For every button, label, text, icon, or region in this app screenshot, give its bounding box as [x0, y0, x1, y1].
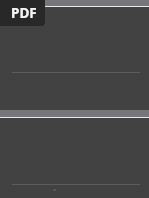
- button[interactable]: PDF: [0, 0, 45, 26]
- staticText: PDF: [11, 4, 37, 22]
